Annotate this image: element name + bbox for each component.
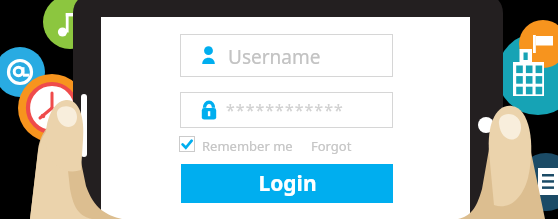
staticText: Login	[258, 169, 317, 198]
button[interactable]: Password field	[180, 92, 393, 128]
button[interactable]: Login	[181, 164, 393, 203]
button[interactable]: Forgot Password	[311, 135, 394, 153]
staticText: Forgot Password	[311, 137, 394, 155]
staticText: Remember me	[202, 137, 293, 155]
button[interactable]: Remember me	[179, 135, 275, 153]
staticText: ************	[226, 99, 344, 121]
button[interactable]: Username field	[180, 34, 393, 77]
staticText: Username	[228, 44, 321, 70]
